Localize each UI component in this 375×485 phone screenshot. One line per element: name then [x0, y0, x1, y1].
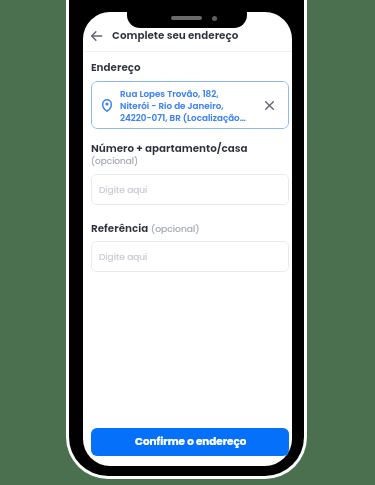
staticText: Niterói - Rio de Janeiro,	[120, 100, 224, 112]
button[interactable]: Digite aqui	[91, 174, 289, 205]
button[interactable]: Voltar	[84, 23, 109, 48]
button[interactable]: Limpar endereço	[258, 94, 280, 116]
staticText: Digite aqui	[99, 184, 148, 197]
staticText: Digite aqui	[99, 251, 148, 264]
staticText: Número + apartamento/casa	[91, 141, 248, 155]
staticText: Confirme o endereço	[135, 434, 247, 448]
staticText: (opcional)	[151, 222, 200, 235]
staticText: 24220-071, BR (Localização…	[120, 112, 246, 124]
button[interactable]: Rua Lopes Trovão, 182,	[91, 81, 289, 129]
staticText: Complete seu endereço	[112, 28, 239, 42]
staticText: (opcional)	[91, 155, 138, 167]
staticText: Referência	[91, 221, 149, 235]
button[interactable]: Confirme o endereço	[91, 428, 289, 456]
button[interactable]: Digite aqui	[91, 241, 289, 272]
staticText: Rua Lopes Trovão, 182,	[120, 88, 219, 100]
staticText: Endereço	[91, 60, 141, 74]
